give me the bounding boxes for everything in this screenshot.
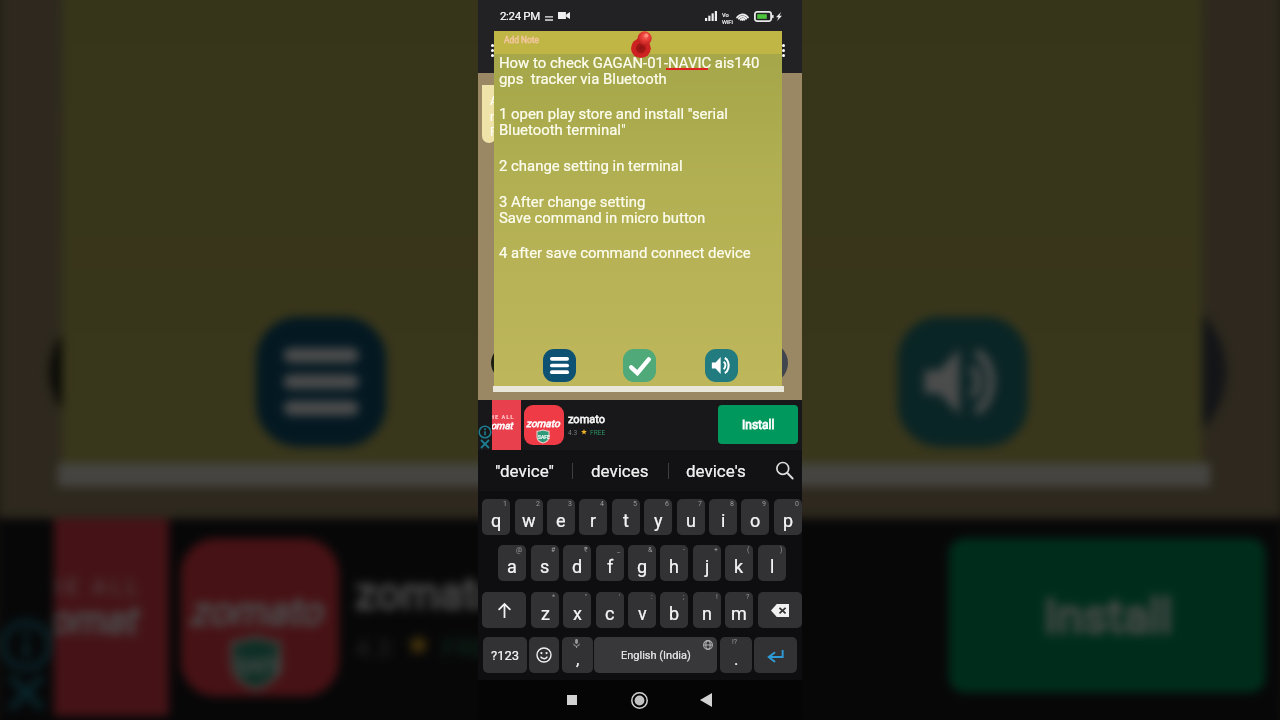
button[interactable]: Recents bbox=[551, 680, 593, 720]
staticText: 5 bbox=[633, 500, 637, 508]
button[interactable]: r bbox=[579, 499, 607, 535]
staticText: v bbox=[638, 603, 647, 624]
button[interactable]: Save bbox=[573, 316, 703, 447]
staticText: k bbox=[734, 556, 744, 577]
button[interactable]: c bbox=[596, 592, 624, 628]
button[interactable]: Ad info bbox=[0, 617, 54, 673]
staticText: Bluetooth terminal" bbox=[499, 121, 626, 138]
button[interactable]: p bbox=[774, 499, 802, 535]
button[interactable]: x bbox=[563, 592, 591, 628]
staticText: & bbox=[648, 546, 653, 554]
button[interactable]: "device" bbox=[0, 716, 371, 720]
staticText: o bbox=[750, 510, 761, 531]
button[interactable]: k bbox=[725, 545, 753, 581]
button[interactable]: Install bbox=[949, 538, 1266, 693]
button[interactable]: Read aloud bbox=[705, 349, 738, 382]
button[interactable]: Back bbox=[685, 680, 727, 720]
staticText: 2:24 PM bbox=[500, 9, 540, 22]
button[interactable]: Close ad bbox=[478, 437, 492, 451]
button[interactable]: o bbox=[741, 499, 769, 535]
button[interactable]: e bbox=[547, 499, 575, 535]
button[interactable]: d bbox=[563, 545, 591, 581]
staticText: n bbox=[702, 603, 712, 624]
staticText: 8 bbox=[730, 500, 734, 508]
button[interactable]: Backspace bbox=[758, 592, 802, 628]
staticText: gps tracker via Bluetooth bbox=[499, 70, 667, 87]
staticText: ?123 bbox=[491, 648, 520, 663]
staticText: 0 bbox=[795, 500, 799, 508]
button[interactable]: "device" bbox=[478, 450, 572, 491]
button[interactable]: Period bbox=[720, 637, 752, 673]
staticText: zomato bbox=[189, 590, 323, 637]
staticText: 9 bbox=[762, 500, 766, 508]
button[interactable]: Enter bbox=[754, 637, 797, 673]
button[interactable]: Close ad bbox=[0, 665, 54, 720]
staticText: d bbox=[572, 556, 583, 577]
button[interactable]: List bbox=[543, 349, 576, 382]
staticText: : bbox=[651, 593, 653, 601]
button[interactable]: f bbox=[596, 545, 624, 581]
staticText: Save command in micro button bbox=[499, 209, 706, 226]
button[interactable]: Emoji bbox=[529, 637, 559, 673]
button[interactable]: Install bbox=[718, 405, 798, 444]
staticText: c bbox=[605, 603, 615, 624]
button[interactable]: n bbox=[693, 592, 721, 628]
button[interactable]: j bbox=[693, 545, 721, 581]
staticText: WiFi bbox=[722, 19, 733, 26]
button[interactable]: Next note menu bbox=[782, 44, 785, 57]
button[interactable]: Symbols bbox=[483, 637, 527, 673]
staticText: x bbox=[573, 603, 582, 624]
staticText: . bbox=[734, 649, 739, 669]
staticText: THE ALL NEW bbox=[492, 414, 515, 420]
button[interactable]: b bbox=[660, 592, 688, 628]
button[interactable]: zomato bbox=[524, 405, 564, 445]
staticText: @ bbox=[516, 546, 523, 554]
button[interactable]: Search bbox=[766, 450, 802, 491]
button[interactable]: i bbox=[709, 499, 737, 535]
button[interactable]: m bbox=[725, 592, 753, 628]
button[interactable]: l bbox=[758, 545, 786, 581]
button[interactable]: s bbox=[531, 545, 559, 581]
staticText: # bbox=[551, 546, 556, 554]
button[interactable]: a bbox=[498, 545, 526, 581]
button[interactable]: q bbox=[482, 499, 510, 535]
staticText: devices bbox=[591, 461, 649, 481]
button[interactable]: y bbox=[644, 499, 672, 535]
staticText: zomato bbox=[526, 418, 560, 430]
button[interactable]: zomato bbox=[181, 538, 339, 697]
button[interactable]: Home bbox=[618, 680, 660, 720]
button[interactable]: v bbox=[628, 592, 656, 628]
staticText: p bbox=[783, 510, 794, 531]
staticText: zomato bbox=[54, 598, 145, 641]
button[interactable]: g bbox=[628, 545, 656, 581]
button[interactable]: List bbox=[256, 316, 387, 447]
button[interactable]: u bbox=[677, 499, 705, 535]
button[interactable]: w bbox=[515, 499, 543, 535]
button[interactable]: device's bbox=[668, 450, 764, 491]
button[interactable]: Save bbox=[623, 349, 656, 382]
button[interactable]: devices bbox=[572, 450, 668, 491]
button[interactable]: Previous note menu bbox=[491, 44, 494, 57]
staticText: h bbox=[669, 556, 679, 577]
button[interactable]: Ad info bbox=[478, 425, 492, 439]
button[interactable]: Space bbox=[594, 637, 717, 673]
staticText: zomato bbox=[568, 413, 606, 426]
staticText: FREE bbox=[442, 633, 505, 665]
staticText: u bbox=[686, 510, 696, 531]
button[interactable]: Shift bbox=[482, 592, 526, 628]
staticText: z bbox=[541, 603, 550, 624]
staticText: device's bbox=[686, 461, 746, 481]
staticText: - bbox=[683, 546, 685, 554]
staticText: Add Note bbox=[504, 35, 539, 45]
staticText: ) bbox=[780, 546, 783, 554]
button[interactable]: h bbox=[660, 545, 688, 581]
button[interactable]: t bbox=[612, 499, 640, 535]
staticText: How to check GAGAN-01-NAVIC ais140 bbox=[499, 54, 760, 71]
button[interactable]: Comma bbox=[562, 637, 593, 673]
staticText: Install bbox=[1044, 590, 1175, 645]
button[interactable]: Read aloud bbox=[897, 316, 1028, 447]
button[interactable]: z bbox=[531, 592, 559, 628]
